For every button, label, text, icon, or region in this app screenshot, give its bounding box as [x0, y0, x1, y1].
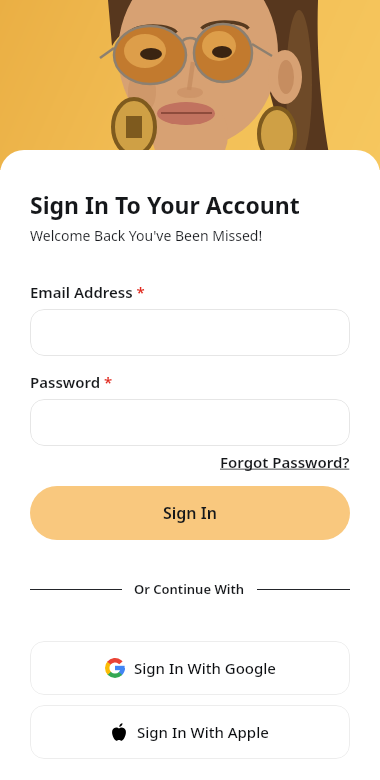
button[interactable]: Sign In — [30, 486, 350, 540]
staticText: Email Address * — [30, 282, 145, 302]
staticText: Password * — [30, 372, 113, 392]
button[interactable] — [30, 399, 350, 446]
button[interactable] — [30, 309, 350, 356]
staticText: Sign In With Google — [134, 658, 276, 678]
button[interactable]: Forgot Password? — [220, 452, 350, 472]
staticText: Or Continue With — [134, 580, 245, 598]
button[interactable]: Sign In With Google — [30, 641, 350, 695]
staticText: Welcome Back You've Been Missed! — [30, 226, 263, 245]
staticText: Sign In With Apple — [137, 722, 269, 742]
staticText: Sign In — [163, 502, 217, 524]
staticText: Sign In To Your Account — [30, 189, 300, 220]
button[interactable]: Sign In With Apple — [30, 705, 350, 759]
